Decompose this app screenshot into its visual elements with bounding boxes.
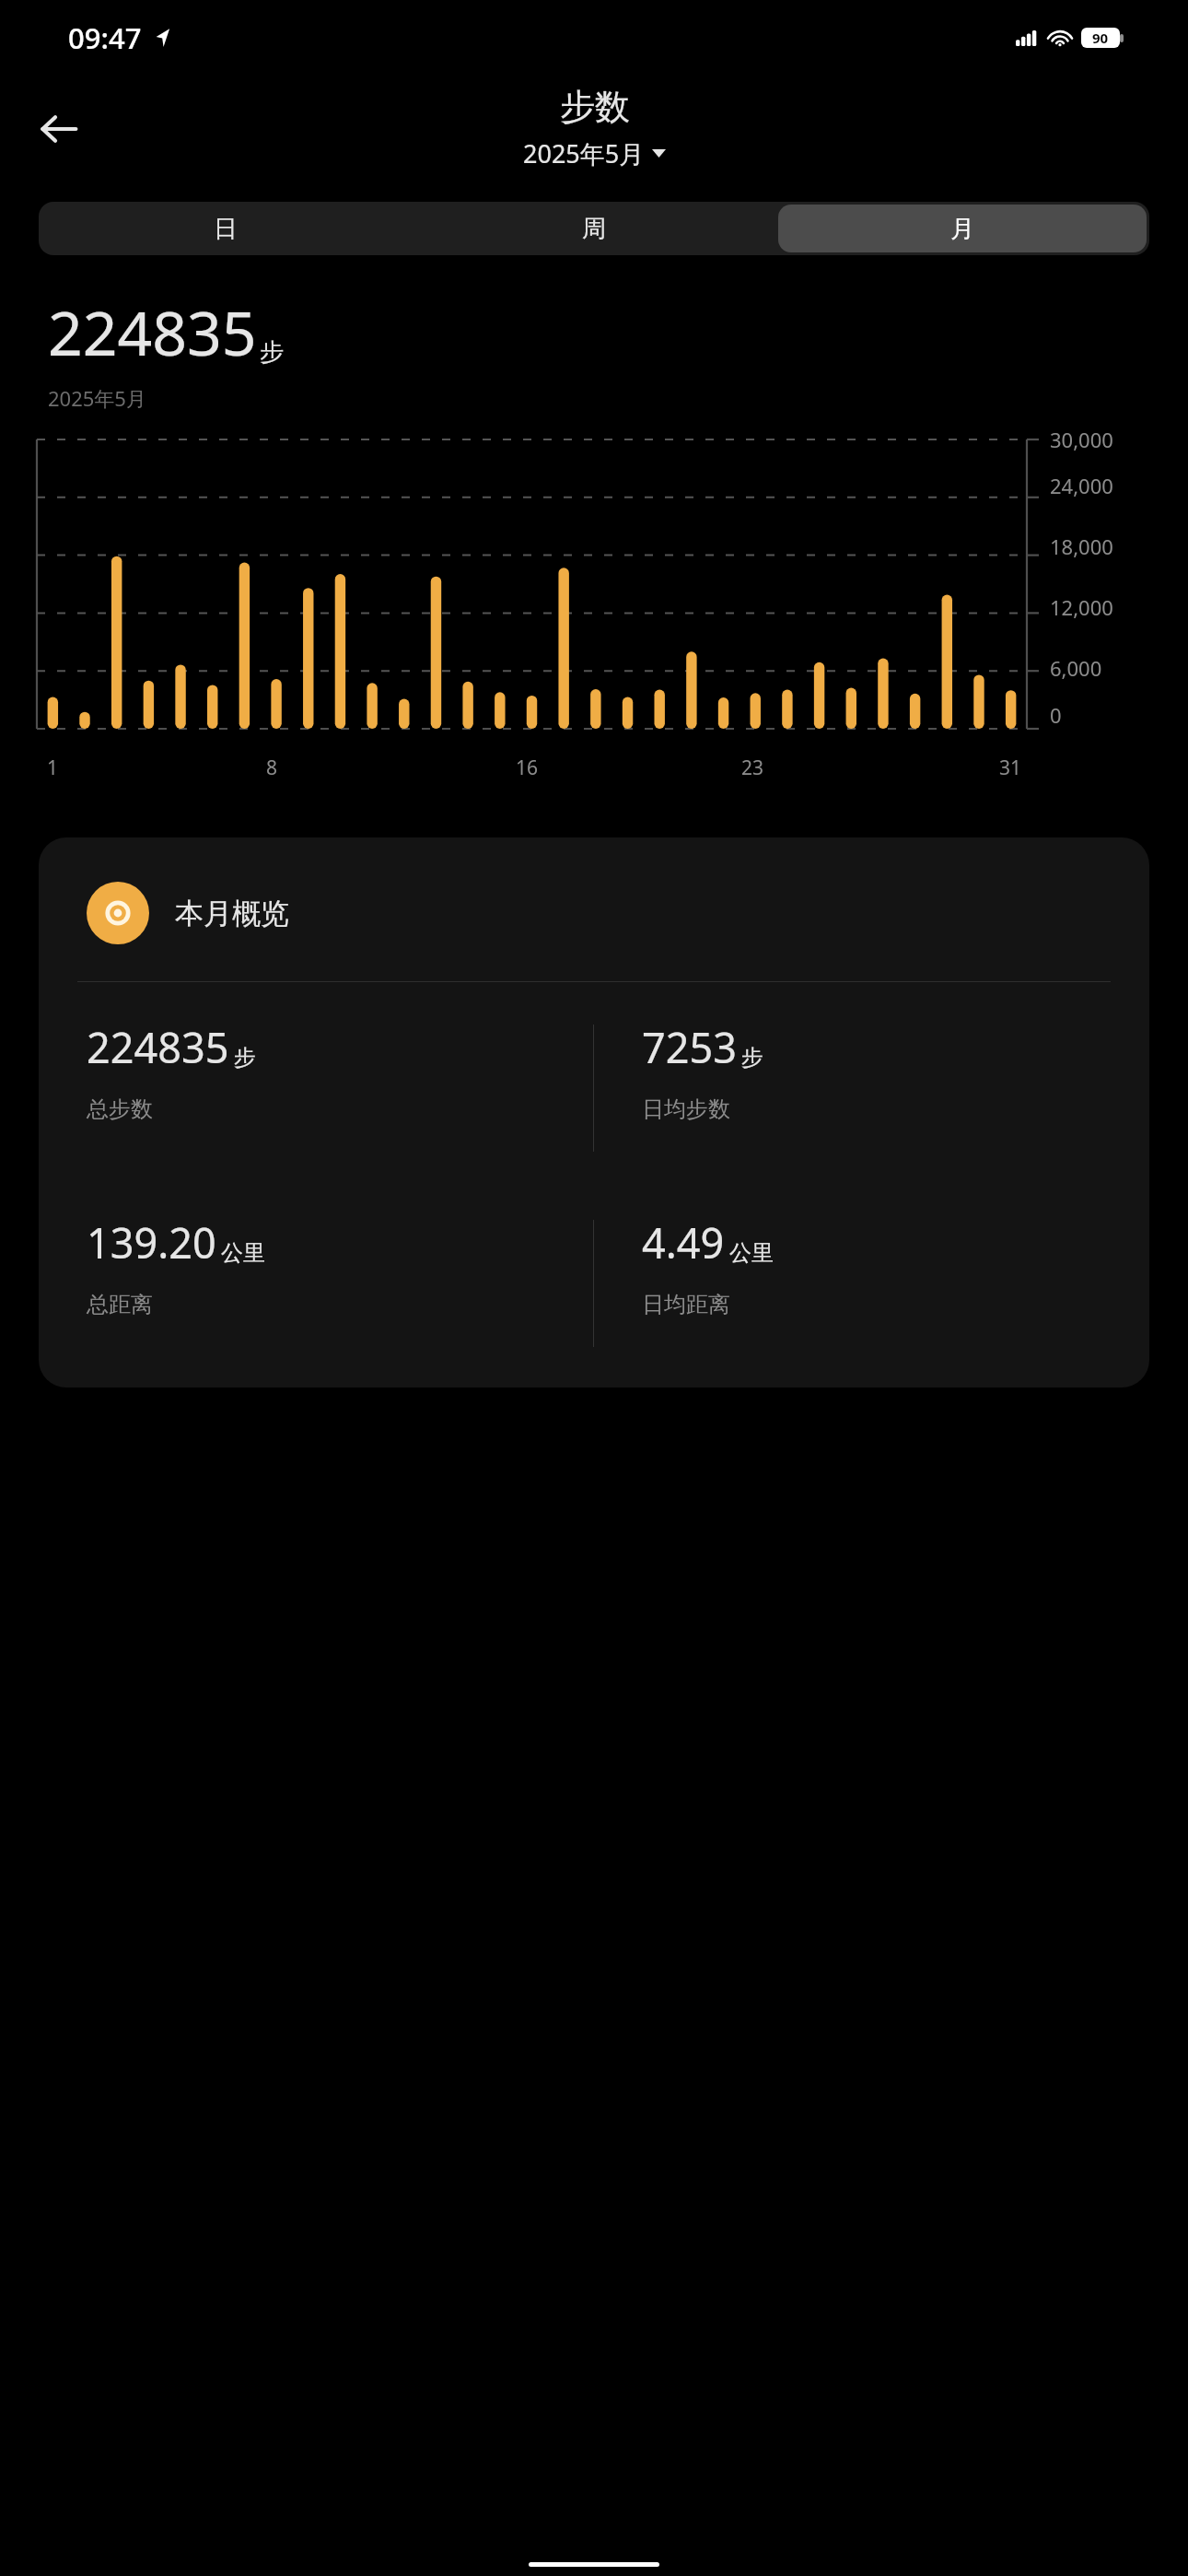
staticText: 18,000 [1050,533,1113,560]
staticText: 月 [950,214,974,244]
staticText: 周 [582,214,606,244]
staticText: 7253 [642,1019,737,1075]
staticText: 日均距离 [642,1291,730,1318]
staticText: 09:47 [68,18,142,57]
staticText: 31 [999,755,1022,781]
staticText: 步数 [560,85,630,129]
staticText: 12,000 [1050,593,1113,621]
staticText: 1 [47,755,59,781]
staticText: 6,000 [1050,654,1102,682]
staticText: 公里 [729,1239,774,1267]
staticText: 公里 [221,1239,265,1267]
staticText: 2025年5月 [523,136,645,170]
button[interactable]: 2025年5月 [519,135,670,172]
staticText: 4.49 [642,1214,725,1270]
staticText: 23 [741,755,764,781]
staticText: 步 [234,1044,256,1071]
staticText: 30,000 [1050,426,1113,453]
staticText: 步 [741,1044,763,1071]
button[interactable]: 日 [41,205,410,252]
button[interactable]: Back [26,96,92,162]
staticText: 总距离 [87,1291,153,1318]
staticText: 139.20 [87,1214,216,1270]
staticText: 224835 [48,290,257,373]
button[interactable]: 周 [410,205,778,252]
button[interactable]: 本月概览 [39,837,1149,1388]
staticText: 日 [214,214,238,244]
staticText: 总步数 [87,1095,153,1123]
staticText: 本月概览 [175,896,289,931]
staticText: 步 [260,337,284,368]
button[interactable]: 月 [778,205,1147,252]
staticText: 2025年5月 [48,384,146,412]
staticText: 0 [1050,701,1062,729]
staticText: 日均步数 [642,1095,730,1123]
staticText: 8 [266,755,278,781]
staticText: 16 [516,755,539,781]
staticText: 24,000 [1050,472,1113,499]
staticText: 90 [1092,29,1109,47]
staticText: 224835 [87,1019,229,1075]
